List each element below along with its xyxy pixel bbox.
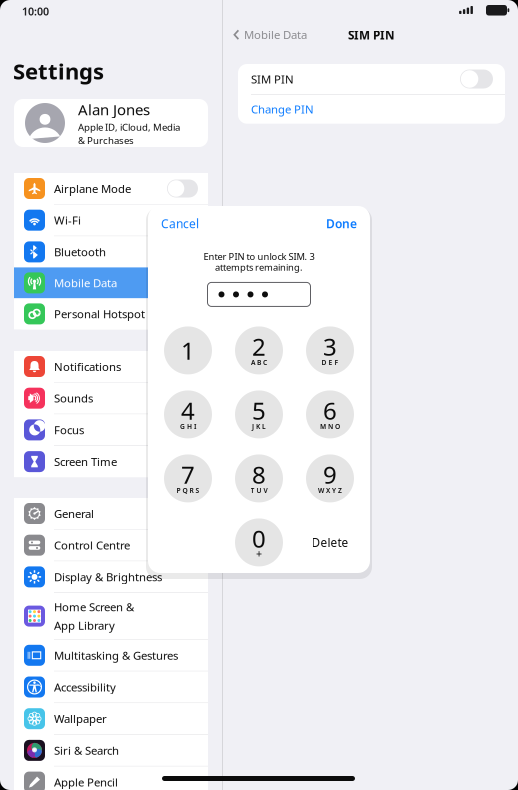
staticText: App Library xyxy=(54,618,115,633)
staticText: SIM PIN xyxy=(348,27,395,43)
staticText: 1 xyxy=(181,334,195,367)
button[interactable]: Mobile Data xyxy=(233,27,307,42)
button[interactable]: Siri & Search xyxy=(14,735,208,766)
staticText: Accessibility xyxy=(54,679,116,695)
button[interactable]: 2 xyxy=(235,326,283,374)
button[interactable]: Mobile Data xyxy=(14,267,208,298)
button[interactable]: Airplane Mode xyxy=(14,173,208,204)
button[interactable]: Control Centre xyxy=(14,530,208,561)
button[interactable]: 5 xyxy=(235,390,283,438)
staticText: Sounds xyxy=(54,390,93,406)
button[interactable]: Home Screen & xyxy=(14,593,208,639)
staticText: P Q R S xyxy=(176,486,199,495)
button[interactable]: 8 xyxy=(235,454,283,502)
staticText: Home Screen & xyxy=(54,599,134,615)
staticText: J K L xyxy=(252,422,266,431)
staticText: Enter PIN to unlock SIM. 3 xyxy=(203,250,314,263)
button[interactable]: Done xyxy=(326,215,357,232)
staticText: Mobile Data xyxy=(54,275,117,291)
staticText: SIM PIN xyxy=(251,71,294,87)
button[interactable]: 1 xyxy=(164,326,212,374)
staticText: Apple Pencil xyxy=(54,774,118,790)
staticText: 3 xyxy=(323,330,337,363)
staticText: D E F xyxy=(321,358,338,367)
button[interactable]: Wallpaper xyxy=(14,703,208,734)
button[interactable]: Alan Jones xyxy=(14,99,208,147)
button[interactable]: 7 xyxy=(164,454,212,502)
staticText: Mobile Data xyxy=(244,27,307,42)
button[interactable]: Sounds xyxy=(14,383,208,414)
button[interactable]: 9 xyxy=(306,454,354,502)
button[interactable]: Cancel xyxy=(161,215,199,232)
staticText: Focus xyxy=(54,422,84,438)
staticText: Display & Brightness xyxy=(54,569,162,585)
staticText: M N O xyxy=(320,422,340,431)
staticText: & Purchases xyxy=(78,134,134,147)
staticText: Done xyxy=(326,215,357,232)
button[interactable]: 4 xyxy=(164,390,212,438)
staticText: Settings xyxy=(13,56,104,86)
button[interactable]: Apple Pencil xyxy=(14,767,208,790)
staticText: 7 xyxy=(181,458,195,491)
staticText: Airplane Mode xyxy=(54,181,131,196)
staticText: Wallpaper xyxy=(54,711,107,726)
staticText: Bluetooth xyxy=(54,244,106,260)
button[interactable]: Wi-Fi xyxy=(14,205,208,236)
button[interactable]: Delete xyxy=(306,518,354,566)
staticText: 2 xyxy=(252,330,266,363)
button[interactable]: Accessibility xyxy=(14,671,208,702)
button[interactable]: General xyxy=(14,498,208,529)
staticText: A B C xyxy=(251,358,267,367)
staticText: attempts remaining. xyxy=(215,261,303,273)
button[interactable]: Personal Hotspot xyxy=(14,298,208,329)
staticText: 0 xyxy=(252,522,266,555)
button[interactable]: Screen Time xyxy=(14,446,208,477)
staticText: Notifications xyxy=(54,359,121,374)
staticText: Personal Hotspot xyxy=(54,306,145,322)
staticText: Wi-Fi xyxy=(54,212,81,228)
button[interactable]: 6 xyxy=(306,390,354,438)
staticText: Change PIN xyxy=(251,101,314,117)
button[interactable]: Focus xyxy=(14,414,208,445)
staticText: 9 xyxy=(323,458,337,491)
button[interactable]: 0 xyxy=(235,518,283,566)
staticText: Multitasking & Gestures xyxy=(54,648,178,663)
button[interactable]: Change PIN xyxy=(238,95,505,124)
staticText: W X Y Z xyxy=(318,486,342,495)
button[interactable]: 3 xyxy=(306,326,354,374)
button[interactable]: Display & Brightness xyxy=(14,561,208,592)
staticText: Siri & Search xyxy=(54,743,119,758)
staticText: Apple ID, iCloud, Media xyxy=(78,121,180,134)
button[interactable]: Bluetooth xyxy=(14,236,208,267)
staticText: T U V xyxy=(250,486,267,495)
staticText: 6 xyxy=(323,394,337,427)
button[interactable]: Multitasking & Gestures xyxy=(14,640,208,671)
staticText: G H I xyxy=(180,422,196,431)
staticText: 5 xyxy=(252,394,266,427)
staticText: Delete xyxy=(311,534,348,550)
staticText: General xyxy=(54,506,94,521)
staticText: Screen Time xyxy=(54,454,117,469)
staticText: 4 xyxy=(181,394,195,427)
staticText: Control Centre xyxy=(54,537,130,553)
staticText: + xyxy=(256,546,262,561)
staticText: Cancel xyxy=(161,215,199,232)
staticText: Alan Jones xyxy=(78,99,150,120)
staticText: 10:00 xyxy=(22,4,49,18)
staticText: 8 xyxy=(252,458,266,491)
button[interactable]: Notifications xyxy=(14,351,208,382)
